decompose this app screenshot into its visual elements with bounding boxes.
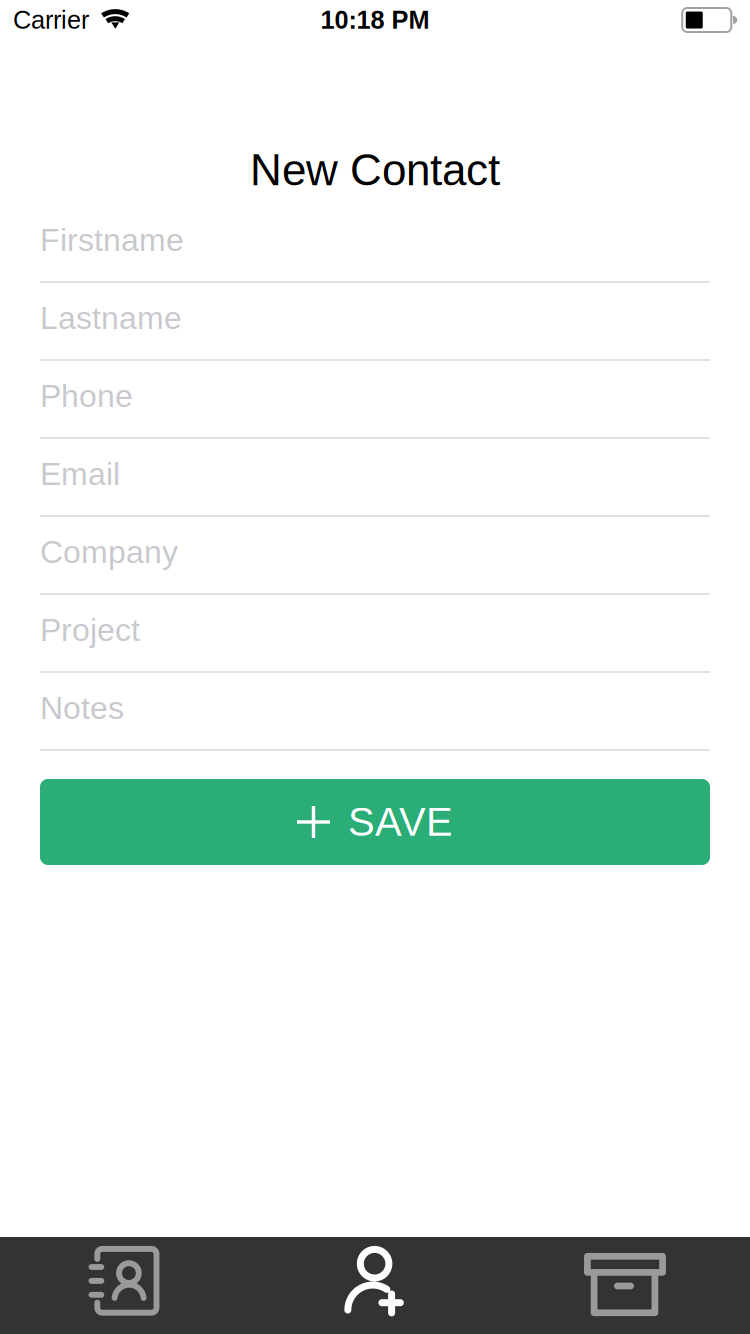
staticText: 10:18 PM: [320, 6, 429, 34]
button[interactable]: SAVE: [40, 779, 710, 865]
staticText: Phone: [40, 378, 133, 414]
staticText: Notes: [40, 690, 124, 726]
staticText: Email: [40, 456, 120, 492]
button[interactable]: Add contact: [250, 1237, 500, 1334]
staticText: Carrier: [13, 6, 89, 34]
staticText: New Contact: [250, 145, 500, 195]
staticText: Lastname: [40, 300, 182, 336]
staticText: Project: [40, 612, 140, 648]
staticText: Firstname: [40, 222, 184, 258]
button[interactable]: Archive: [500, 1237, 750, 1334]
button[interactable]: Contacts: [0, 1237, 250, 1334]
staticText: Company: [40, 534, 178, 570]
staticText: SAVE: [348, 800, 453, 844]
